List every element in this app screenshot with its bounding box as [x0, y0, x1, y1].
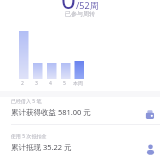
- staticText: 使用 5 次抵扣金: [11, 133, 47, 140]
- other: Cashback detail: [143, 142, 157, 156]
- button[interactable]: 已经借入 5 笔: [0, 90, 160, 124]
- staticText: 0: [61, 0, 76, 16]
- staticText: 3: [35, 80, 38, 87]
- staticText: 累计抵现 35.22 元: [11, 142, 72, 152]
- staticText: 2: [21, 80, 24, 87]
- staticText: 4: [49, 80, 52, 87]
- staticText: 已参与周转: [0, 10, 160, 18]
- button[interactable]: 使用 5 次抵扣金: [0, 125, 160, 159]
- staticText: /52周: [76, 0, 99, 11]
- staticText: 累计获得收益 581.00 元: [11, 107, 91, 117]
- staticText: 已经借入 5 笔: [11, 98, 42, 105]
- staticText: 5: [63, 80, 66, 87]
- staticText: 本周: [73, 80, 83, 86]
- other: Earnings detail: [143, 107, 157, 121]
